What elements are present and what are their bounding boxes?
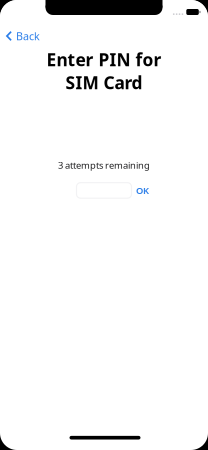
- staticText: Enter PIN for: [46, 48, 161, 71]
- staticText: OK: [136, 184, 149, 197]
- staticText: 3 attempts remaining: [58, 159, 150, 171]
- staticText: Back: [16, 29, 40, 43]
- button[interactable]: OK: [132, 181, 153, 200]
- button[interactable]: Back: [0, 25, 46, 47]
- staticText: SIM Card: [65, 71, 142, 94]
